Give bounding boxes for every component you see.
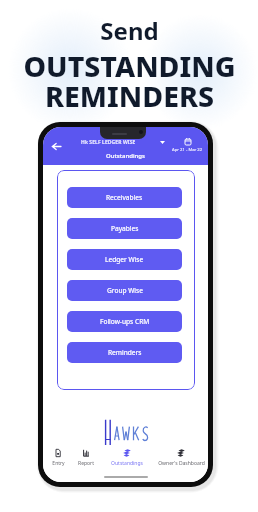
button[interactable]: Receivables: [67, 187, 182, 208]
staticText: Ledger Wise: [105, 255, 144, 264]
staticText: Apr 21 - Mar 22: [172, 147, 203, 153]
staticText: Follow-ups CRM: [100, 317, 150, 326]
button[interactable]: Entry: [45, 445, 71, 471]
button[interactable]: Hawks: [103, 419, 155, 447]
staticText: Send: [100, 14, 159, 47]
staticText: REMINDERS: [45, 77, 214, 116]
button[interactable]: Back: [49, 139, 63, 153]
staticText: Owner's Dashboard: [158, 460, 205, 467]
button[interactable]: Payables: [67, 218, 182, 239]
button[interactable]: Group Wise: [67, 280, 182, 301]
staticText: Entry: [52, 460, 65, 467]
staticText: Group Wise: [107, 286, 143, 295]
staticText: Receivables: [106, 193, 143, 202]
button[interactable]: Outstandings: [105, 445, 149, 471]
button[interactable]: Ledger Wise: [67, 249, 182, 270]
staticText: Reminders: [108, 348, 142, 357]
staticText: Report: [78, 460, 94, 467]
staticText: Outstandings: [111, 460, 143, 467]
button[interactable]: Hk SELF LEDGER WISE: [81, 139, 165, 146]
button[interactable]: Reminders: [67, 342, 182, 363]
button[interactable]: Report: [72, 445, 100, 471]
button[interactable]: Owner's Dashboard: [153, 445, 208, 471]
button[interactable]: Follow-ups CRM: [67, 311, 182, 332]
staticText: Outstandings: [106, 152, 145, 160]
staticText: Payables: [111, 224, 139, 233]
button[interactable]: Date range: [172, 138, 203, 153]
staticText: OUTSTANDING: [23, 47, 236, 86]
staticText: Hk SELF LEDGER WISE: [81, 139, 136, 146]
